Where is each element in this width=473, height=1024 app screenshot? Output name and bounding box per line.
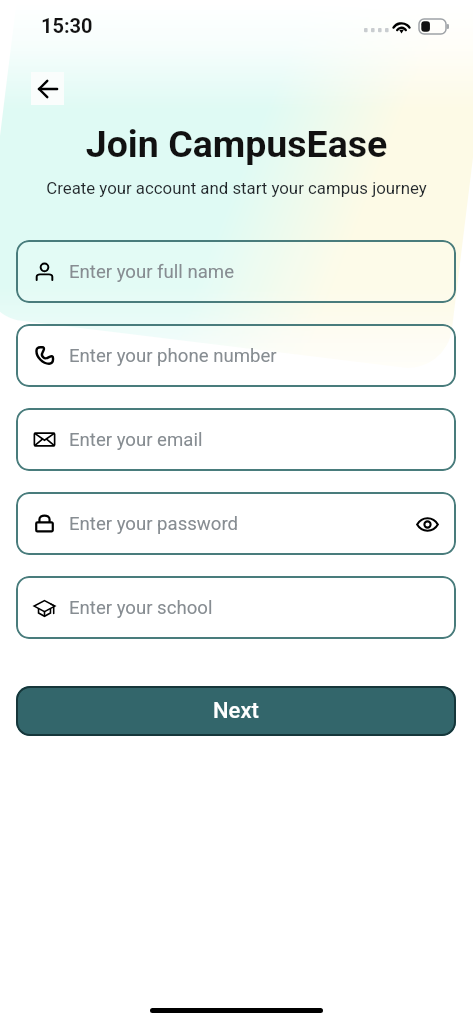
staticText: Create your account and start your campu… (0, 178, 473, 198)
button[interactable]: Back (31, 72, 64, 105)
button[interactable]: Next (16, 686, 456, 736)
button[interactable]: Enter your school (16, 576, 456, 639)
button[interactable]: Enter your full name (16, 240, 456, 303)
staticText: Enter your school (69, 597, 213, 619)
button[interactable]: Show password (412, 509, 442, 539)
staticText: Next (213, 698, 259, 724)
staticText: Join CampusEase (0, 122, 473, 166)
staticText: Enter your phone number (69, 345, 277, 367)
button[interactable]: Enter your email (16, 408, 456, 471)
staticText: Enter your email (69, 429, 203, 451)
staticText: 15:30 (41, 14, 93, 37)
staticText: Enter your password (69, 513, 239, 535)
button[interactable]: Enter your phone number (16, 324, 456, 387)
staticText: Enter your full name (69, 261, 235, 283)
button[interactable]: Enter your password (16, 492, 456, 555)
